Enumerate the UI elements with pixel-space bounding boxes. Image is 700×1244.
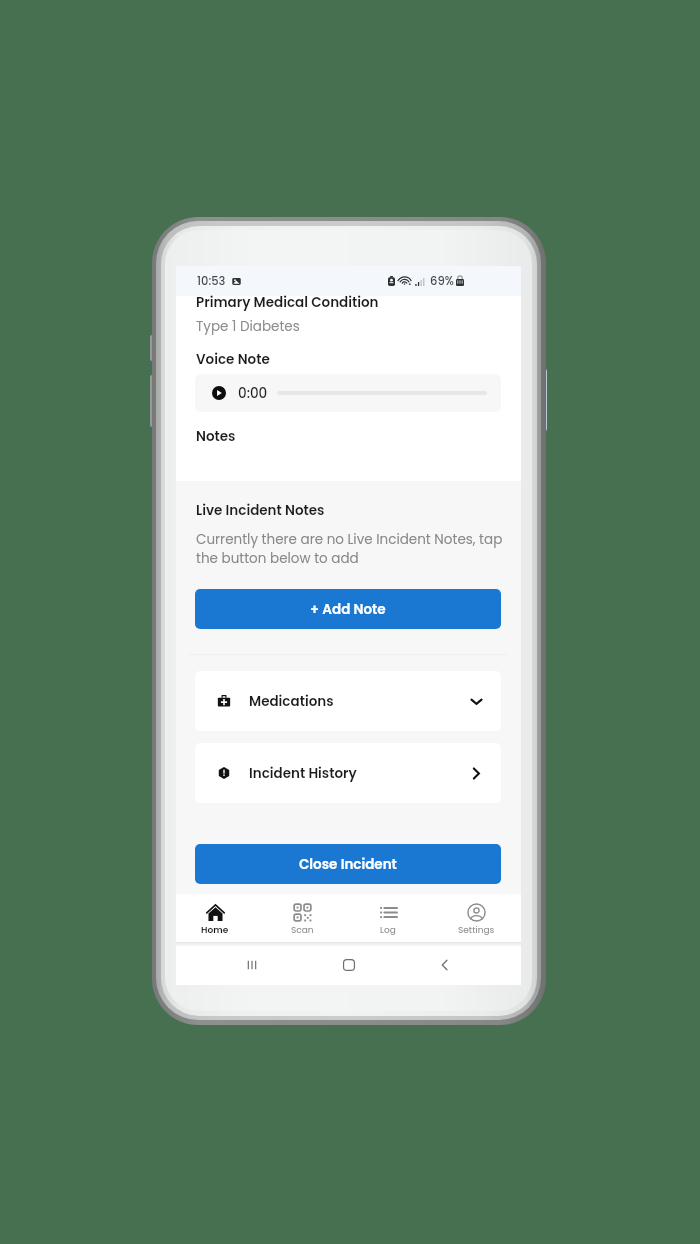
staticText: Incident History: [249, 764, 357, 783]
staticText: Live Incident Notes: [196, 501, 325, 520]
button[interactable]: Close Incident: [195, 844, 501, 884]
staticText: Voice Note: [196, 350, 270, 369]
button[interactable]: Recent apps: [230, 946, 274, 983]
staticText: 0:00: [238, 384, 268, 403]
staticText: 69%: [430, 273, 454, 289]
staticText: Log: [380, 924, 396, 937]
button[interactable]: Scan: [259, 894, 345, 942]
staticText: + Add Note: [310, 600, 386, 619]
staticText: Medications: [249, 692, 334, 711]
staticText: Primary Medical Condition: [196, 293, 379, 312]
button[interactable]: Home: [327, 946, 371, 983]
staticText: Settings: [458, 924, 495, 937]
staticText: 10:53: [197, 273, 226, 289]
button[interactable]: + Add Note: [195, 589, 501, 629]
button[interactable]: Settings: [433, 894, 519, 942]
button[interactable]: Incident History: [195, 743, 501, 803]
staticText: Close Incident: [299, 855, 397, 874]
button[interactable]: Back: [423, 946, 467, 983]
staticText: Scan: [291, 924, 314, 937]
staticText: Type 1 Diabetes: [196, 317, 300, 336]
staticText: Notes: [196, 427, 236, 446]
button[interactable]: Home: [172, 894, 258, 942]
button[interactable]: Play voice note: [212, 386, 226, 400]
staticText: Home: [201, 924, 229, 937]
button[interactable]: Medications: [195, 671, 501, 731]
button[interactable]: Log: [345, 894, 431, 942]
staticText: Currently there are no Live Incident Not…: [196, 530, 506, 568]
